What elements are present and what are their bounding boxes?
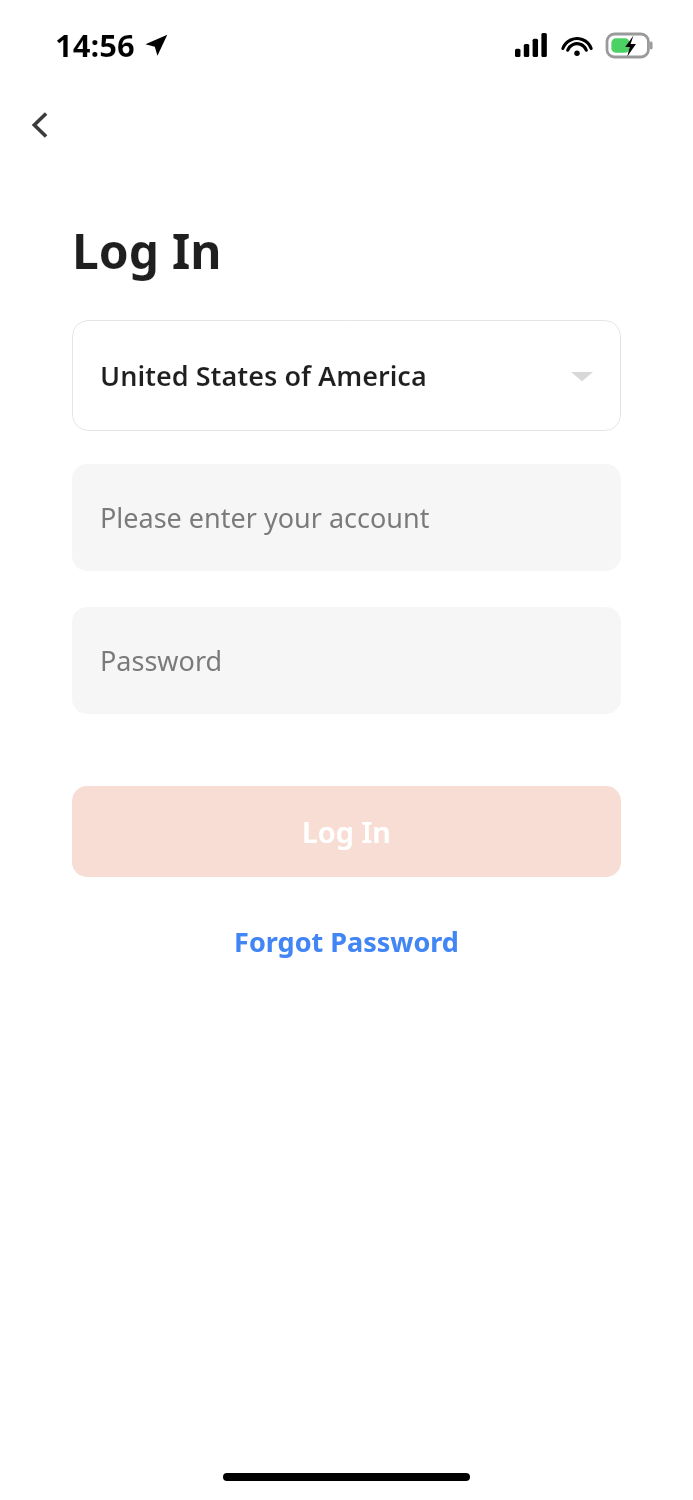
staticText: Forgot Password (234, 923, 459, 960)
staticText: Password (100, 642, 223, 679)
staticText: Log In (72, 218, 222, 283)
staticText: 14:56 (55, 24, 135, 66)
staticText: Please enter your account (100, 499, 430, 536)
button[interactable]: Forgot Password (0, 914, 693, 968)
staticText: Log In (302, 812, 391, 851)
button[interactable]: Back (10, 95, 70, 155)
button[interactable]: United States of America (72, 320, 621, 431)
button[interactable]: Password (72, 607, 621, 714)
staticText: United States of America (100, 357, 427, 394)
button[interactable]: Please enter your account (72, 464, 621, 571)
button[interactable]: Log In (72, 786, 621, 877)
